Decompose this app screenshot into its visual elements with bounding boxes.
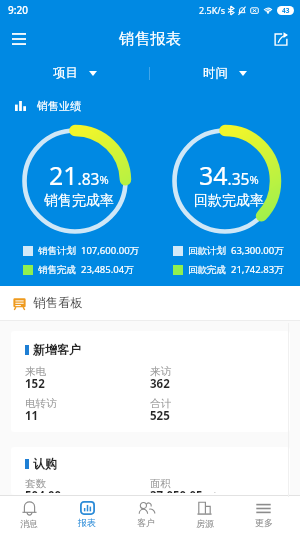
staticText: 362 (150, 376, 170, 392)
staticText: 报表 (78, 517, 96, 528)
staticText: 销售完成 (38, 264, 76, 276)
button[interactable]: 新增客户 (11, 331, 290, 432)
staticText: 2.5K/s (199, 4, 225, 16)
staticText: 来访 (150, 365, 171, 378)
staticText: 电转访 (25, 397, 57, 410)
staticText: 销售报表 (119, 29, 181, 49)
staticText: 43 (282, 6, 290, 15)
staticText: 63,300.00万 (231, 244, 284, 257)
staticText: 时间 (203, 65, 228, 81)
staticText: 消息 (20, 518, 38, 529)
button[interactable]: 时间 (150, 58, 300, 88)
staticText: 34.35% (199, 158, 259, 192)
staticText: 新增客户 (33, 342, 81, 357)
staticText: 回款计划 (188, 245, 226, 257)
staticText: 套数 (25, 477, 46, 490)
button[interactable]: 更多 (234, 496, 293, 533)
button[interactable]: 消息 (0, 496, 58, 533)
staticText: 销售计划 (38, 245, 76, 257)
button[interactable]: 房源 (175, 496, 234, 533)
staticText: 37,050.05 ㎡ (150, 488, 218, 493)
staticText: 11 (25, 408, 39, 424)
staticText: 152 (25, 376, 45, 392)
staticText: 面积 (150, 477, 171, 490)
staticText: 107,600.00万 (81, 244, 140, 257)
staticText: 21.83% (49, 158, 109, 192)
staticText: 销售看板 (33, 295, 83, 311)
button[interactable]: 客户 (116, 496, 175, 533)
staticText: 房源 (196, 518, 214, 529)
staticText: 23,485.04万 (81, 263, 134, 276)
staticText: 504.00 (25, 488, 62, 493)
staticText: 合计 (150, 397, 171, 410)
staticText: 销售完成率 (44, 192, 114, 210)
button[interactable]: 报表 (58, 496, 116, 533)
button[interactable]: Menu (0, 20, 38, 58)
staticText: 9:20 (8, 3, 28, 17)
staticText: 回款完成率 (194, 192, 264, 210)
staticText: 销售业绩 (37, 99, 81, 113)
staticText: 来电 (25, 365, 46, 378)
button[interactable]: Share (262, 20, 300, 58)
button[interactable]: 项目 (0, 58, 150, 88)
staticText: 客户 (137, 517, 155, 528)
staticText: 更多 (255, 517, 273, 528)
button[interactable]: 认购 (11, 447, 290, 495)
staticText: 525 (150, 408, 170, 424)
staticText: 回款完成 (188, 264, 226, 276)
staticText: 认购 (33, 456, 57, 471)
staticText: 项目 (53, 65, 78, 81)
staticText: 21,742.83万 (231, 263, 284, 276)
